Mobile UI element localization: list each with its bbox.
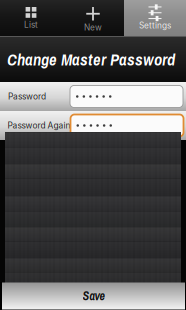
- staticText: Change Master Password: [7, 48, 175, 71]
- staticText: Password: [8, 91, 46, 102]
- button[interactable]: List: [0, 0, 62, 36]
- staticText: Settings: [139, 20, 171, 30]
- button[interactable]: Settings: [124, 0, 186, 36]
- staticText: New: [84, 22, 102, 32]
- button[interactable]: Save: [0, 282, 186, 309]
- staticText: Password Again: [7, 120, 70, 131]
- staticText: List: [24, 20, 38, 30]
- button[interactable]: New: [62, 0, 124, 36]
- staticText: Save: [82, 288, 104, 304]
